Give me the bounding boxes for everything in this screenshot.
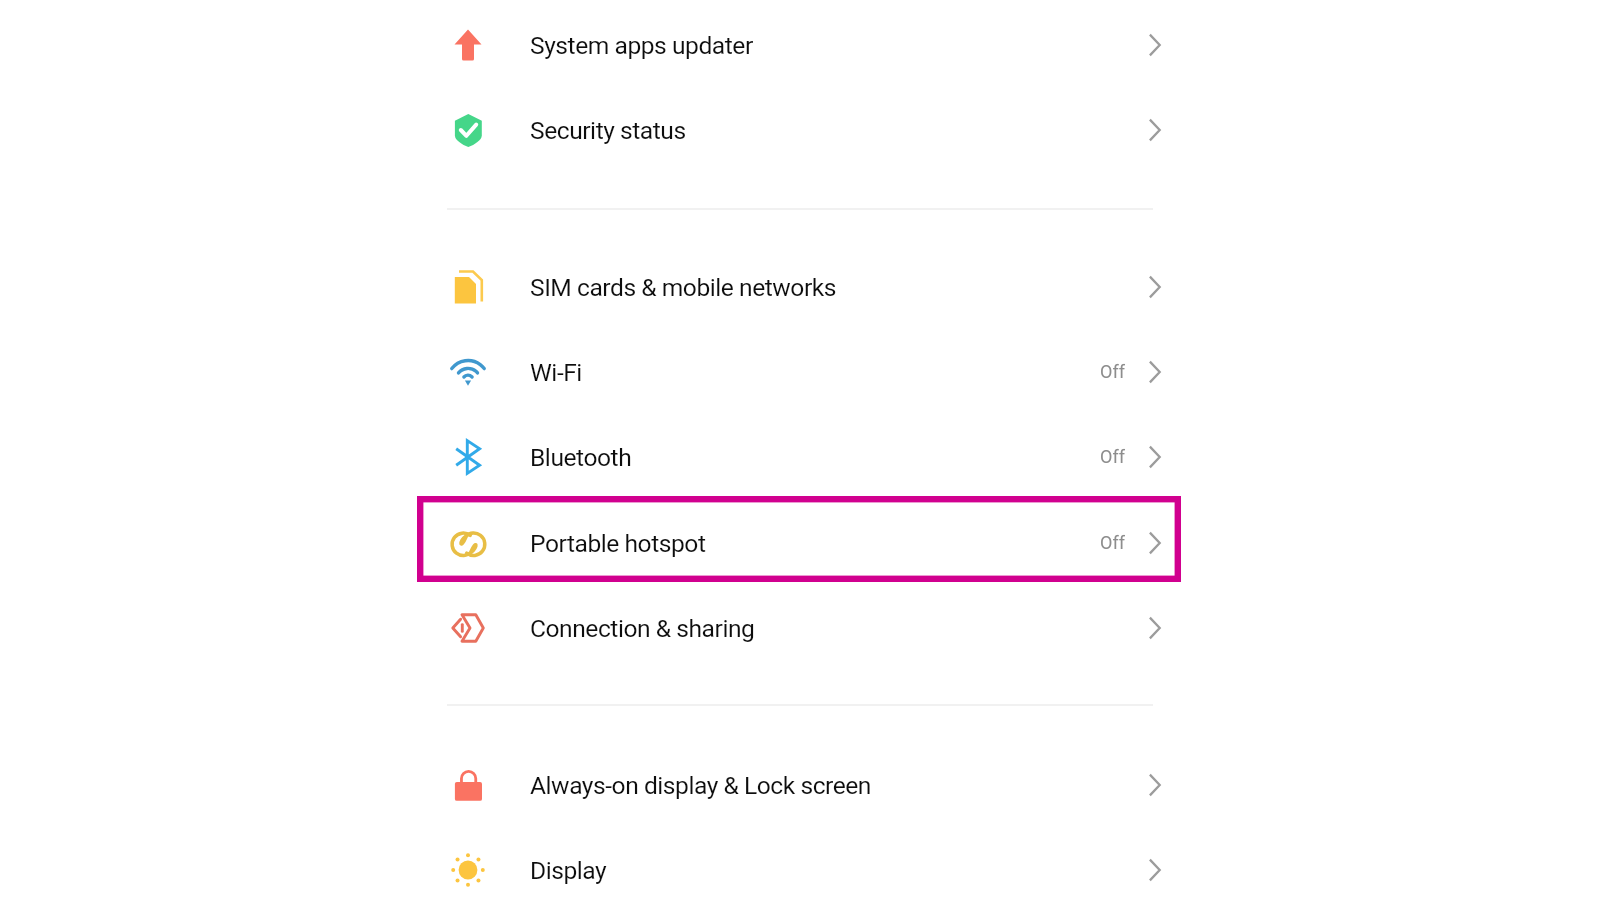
staticText: Bluetooth xyxy=(530,443,632,472)
button[interactable]: Always-on display & Lock screen xyxy=(417,742,1181,827)
button[interactable]: SIM cards & mobile networks xyxy=(417,244,1181,329)
button[interactable]: Wi-Fi xyxy=(417,329,1181,414)
staticText: Portable hotspot xyxy=(530,529,706,558)
staticText: Wi-Fi xyxy=(530,358,582,387)
button[interactable]: Display xyxy=(417,827,1181,900)
staticText: Off xyxy=(1100,532,1125,553)
staticText: Security status xyxy=(530,116,686,145)
staticText: Display xyxy=(530,856,607,885)
staticText: Off xyxy=(1100,361,1125,382)
staticText: SIM cards & mobile networks xyxy=(530,273,837,302)
button[interactable]: Bluetooth xyxy=(417,414,1181,499)
staticText: Connection & sharing xyxy=(530,614,755,643)
staticText: Always-on display & Lock screen xyxy=(530,771,871,800)
button[interactable]: Portable hotspot xyxy=(417,500,1181,585)
button[interactable]: Connection & sharing xyxy=(417,585,1181,670)
staticText: System apps updater xyxy=(530,31,753,60)
staticText: Off xyxy=(1100,446,1125,467)
button[interactable]: Security status xyxy=(417,87,1181,172)
button[interactable]: System apps updater xyxy=(417,2,1181,87)
